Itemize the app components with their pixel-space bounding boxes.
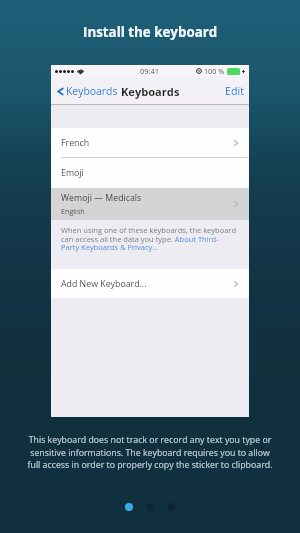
staticText: 100 % (204, 66, 225, 76)
button[interactable]: Page 1 (125, 503, 133, 511)
button[interactable]: Wemoji — Medicals (51, 188, 249, 220)
button[interactable]: Keyboards (51, 84, 122, 98)
button[interactable]: Add New Keyboard... (51, 269, 249, 298)
staticText: Install the keyboard (83, 23, 218, 41)
staticText: Add New Keyboard... (61, 278, 147, 290)
staticText: Emoji (61, 167, 84, 179)
button[interactable]: Emoji (51, 158, 249, 188)
staticText: Wemoji — Medicals (61, 192, 142, 204)
staticText: French (61, 137, 90, 149)
button[interactable]: Page 3 (167, 503, 175, 511)
button[interactable]: French (51, 128, 249, 157)
staticText: English (61, 206, 85, 216)
staticText: 09:41 (140, 66, 160, 76)
button[interactable]: Page 2 (146, 503, 154, 511)
staticText: Keyboards (121, 84, 180, 99)
staticText: This keyboard does not track or record a… (25, 434, 275, 470)
staticText: Keyboards (66, 84, 118, 98)
staticText: When using one of these keyboards, the k… (61, 225, 236, 252)
button[interactable]: Edit (225, 84, 249, 99)
